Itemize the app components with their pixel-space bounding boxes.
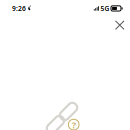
staticText: 5G <box>100 4 109 13</box>
staticText: 9:26 <box>12 4 26 13</box>
button[interactable]: Close <box>110 13 129 33</box>
staticText: ? <box>72 119 76 130</box>
